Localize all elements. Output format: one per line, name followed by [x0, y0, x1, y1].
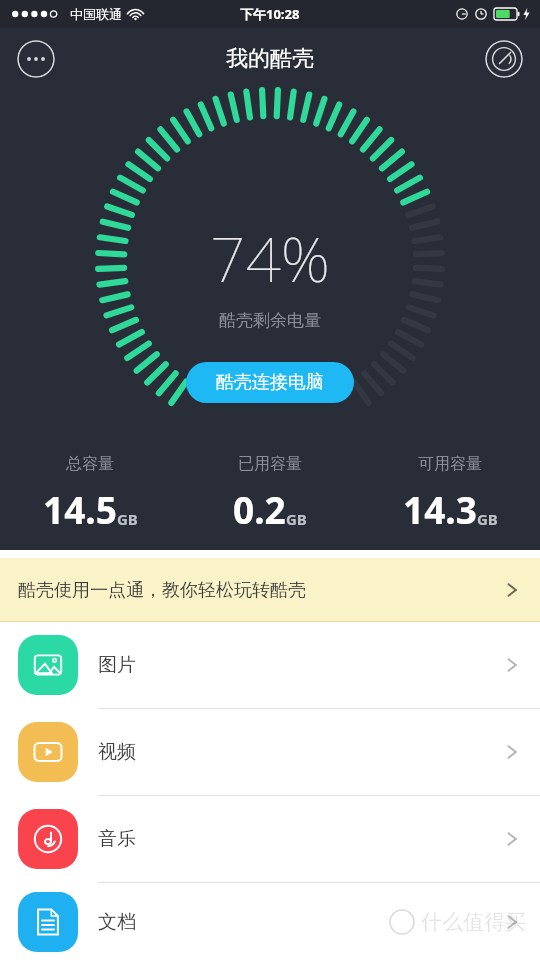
staticText: 14.3 — [403, 484, 477, 534]
staticText: 已用容量 — [238, 454, 302, 474]
staticText: 音乐 — [98, 827, 504, 851]
button[interactable]: 酷壳连接电脑 — [186, 362, 354, 403]
staticText: 酷壳连接电脑 — [216, 371, 324, 394]
staticText: 酷壳剩余电量 — [219, 310, 321, 331]
staticText: GB — [117, 509, 138, 529]
button[interactable]: 文档 — [0, 883, 540, 960]
staticText: GB — [286, 509, 307, 529]
staticText: 0.2 — [233, 484, 286, 534]
button[interactable]: 酷壳使用一点通，教你轻松玩转酷壳 — [0, 558, 540, 622]
staticText: 下午10:28 — [240, 5, 300, 23]
button[interactable]: 音乐 — [0, 796, 540, 882]
button[interactable]: More options — [17, 40, 55, 78]
staticText: 什么值得买 — [421, 909, 526, 935]
button[interactable]: 视频 — [0, 709, 540, 795]
staticText: 14.5 — [43, 484, 117, 534]
staticText: 图片 — [98, 653, 504, 677]
button[interactable]: 图片 — [0, 622, 540, 708]
staticText: 可用容量 — [418, 454, 482, 474]
staticText: 我的酷壳 — [226, 45, 314, 73]
button[interactable]: Speed test — [485, 40, 523, 78]
staticText: 酷壳使用一点通，教你轻松玩转酷壳 — [18, 579, 306, 602]
staticText: 文档 — [98, 910, 504, 934]
staticText: 总容量 — [66, 454, 114, 474]
staticText: 视频 — [98, 740, 504, 764]
staticText: 74% — [210, 216, 330, 300]
staticText: 中国联通 — [70, 6, 122, 22]
staticText: GB — [477, 509, 498, 529]
